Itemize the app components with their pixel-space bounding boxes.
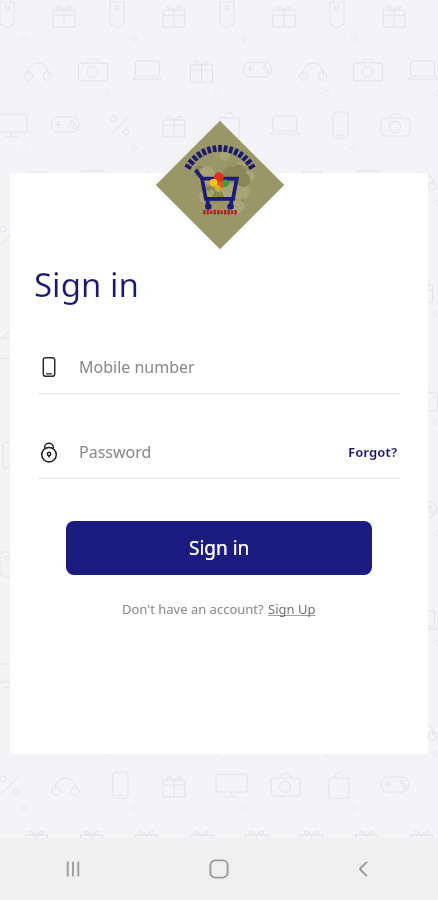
button[interactable]: Forgot?: [346, 439, 400, 465]
staticText: Sign Up: [268, 600, 316, 618]
button[interactable]: Sign in: [66, 521, 372, 575]
staticText: Sign in: [34, 262, 139, 307]
button[interactable]: Recent apps: [0, 838, 146, 900]
staticText: Password: [79, 441, 152, 463]
button[interactable]: Mobile number: [38, 350, 400, 394]
button[interactable]: Home: [146, 838, 292, 900]
staticText: Sign in: [189, 535, 250, 561]
staticText: Mobile number: [79, 356, 195, 378]
button[interactable]: Sign Up: [268, 600, 316, 618]
button[interactable]: Back: [292, 838, 438, 900]
staticText: Forgot?: [348, 443, 398, 461]
button[interactable]: Password: [38, 441, 346, 463]
staticText: Don't have an account?: [122, 600, 268, 618]
